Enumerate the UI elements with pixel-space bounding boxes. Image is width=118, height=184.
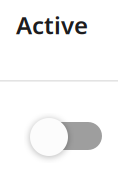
button[interactable]: Active toggle — [0, 0, 118, 184]
staticText: Active — [16, 9, 88, 41]
